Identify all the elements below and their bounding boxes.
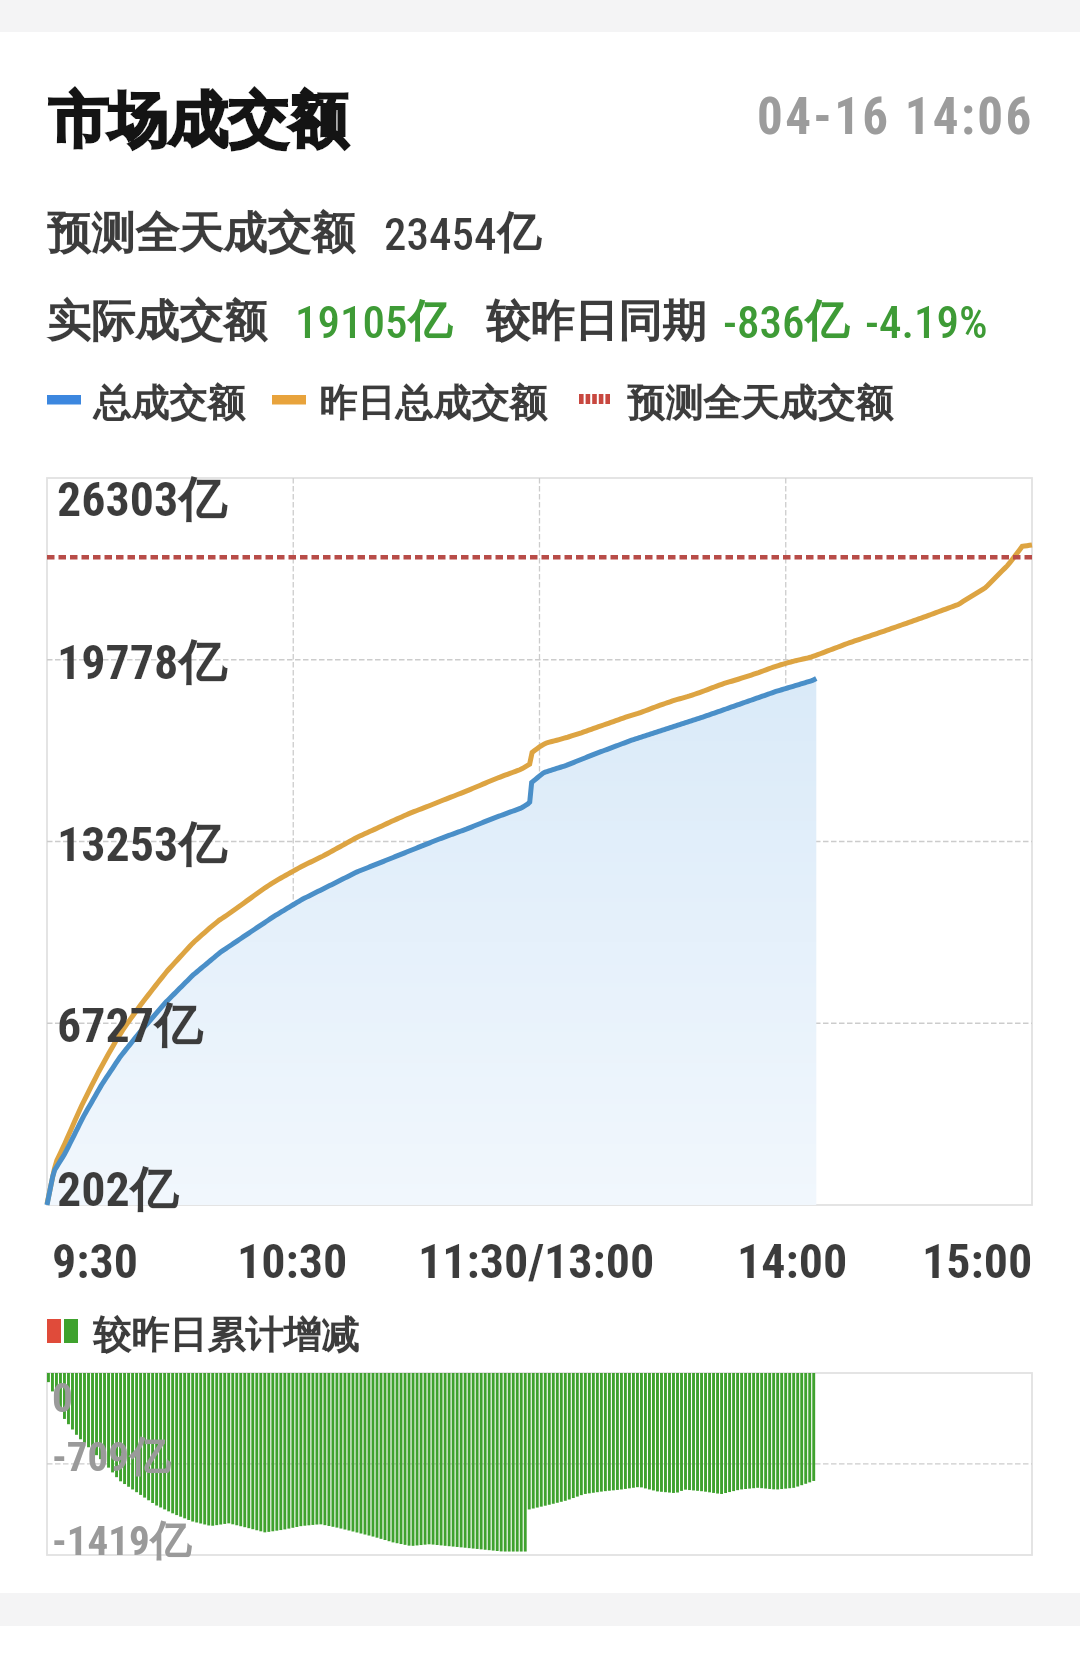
staticText: 6727亿: [57, 996, 203, 1056]
staticText: 预测全天成交额: [627, 379, 893, 427]
staticText: 亿: [497, 206, 541, 261]
staticText: 19105: [295, 296, 408, 349]
staticText: 9:30: [52, 1233, 138, 1289]
staticText: -4.19%: [865, 296, 988, 349]
staticText: 亿: [805, 294, 849, 349]
staticText: 实际成交额: [47, 294, 267, 349]
staticText: 202亿: [57, 1160, 178, 1220]
staticText: -836: [723, 296, 805, 349]
staticText: 11:30/13:00: [418, 1233, 655, 1289]
staticText: 较昨日累计增减: [93, 1311, 359, 1359]
staticText: 昨日总成交额: [319, 379, 547, 427]
staticText: 19778亿: [57, 633, 227, 693]
staticText: 0: [52, 1374, 73, 1422]
staticText: 亿: [408, 294, 452, 349]
staticText: 23454: [384, 208, 497, 261]
staticText: 26303亿: [57, 470, 227, 530]
staticText: 10:30: [237, 1233, 348, 1289]
staticText: 市场成交额: [48, 83, 348, 159]
staticText: 预测全天成交额: [47, 206, 355, 261]
staticText: 15:00: [922, 1233, 1033, 1289]
staticText: -709亿: [52, 1432, 170, 1484]
staticText: 较昨日同期: [486, 294, 706, 349]
staticText: 04-16 14:06: [757, 87, 1034, 147]
staticText: 14:00: [737, 1233, 848, 1289]
staticText: 总成交额: [93, 379, 245, 427]
staticText: 13253亿: [57, 815, 227, 875]
staticText: -1419亿: [52, 1516, 191, 1568]
